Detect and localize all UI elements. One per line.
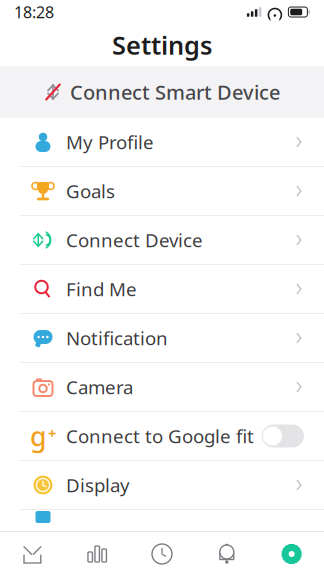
staticText: Settings <box>112 28 212 62</box>
button[interactable]: Statistics <box>65 532 130 576</box>
staticText: Connect Device <box>66 228 203 252</box>
staticText: Camera <box>66 375 133 399</box>
button[interactable]: Alerts <box>194 532 259 576</box>
button[interactable]: History <box>130 532 194 576</box>
staticText: Display <box>66 473 130 497</box>
button[interactable]: Camera <box>0 363 324 412</box>
staticText: Find Me <box>66 277 137 301</box>
staticText: Goals <box>66 179 115 203</box>
button[interactable]: Connect Device <box>0 216 324 265</box>
button[interactable]: Connect Smart Device <box>0 66 324 118</box>
staticText: Connect to Google fit <box>66 424 254 448</box>
staticText: Notification <box>66 326 168 350</box>
button[interactable]: Home <box>0 532 65 576</box>
button[interactable]: Goals <box>0 167 324 216</box>
staticText: My Profile <box>66 130 154 154</box>
staticText: + <box>48 423 56 443</box>
staticText: g <box>30 418 47 454</box>
button[interactable]: Notification <box>0 314 324 363</box>
staticText: Connect Smart Device <box>70 79 280 105</box>
button[interactable]: Display <box>0 461 324 510</box>
button[interactable]: Settings <box>259 532 324 576</box>
staticText: 18:28 <box>14 1 54 23</box>
button[interactable]: My Profile <box>0 118 324 167</box>
button[interactable]: Find Me <box>0 265 324 314</box>
button[interactable]: g <box>0 412 324 461</box>
